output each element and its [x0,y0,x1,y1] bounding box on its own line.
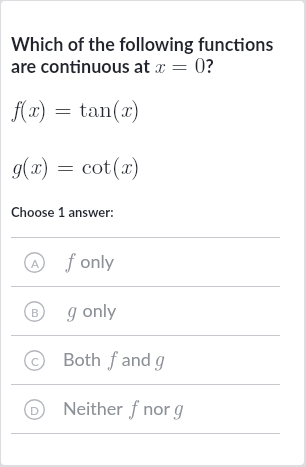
staticText: D [30,403,39,417]
staticText: g only [66,293,117,323]
staticText: f(x) = tan(x) [12,92,140,124]
button[interactable]: A [1,238,304,286]
button[interactable]: B [1,287,304,335]
button[interactable]: D [1,385,304,433]
staticText: Choose 1 answer: [11,204,114,220]
staticText: A [31,256,39,270]
staticText: B [31,305,39,319]
staticText: f only [66,244,114,274]
button[interactable]: C [1,336,304,384]
staticText: Neither f nor g [63,391,183,421]
staticText: C [31,354,39,368]
staticText: Both f and g [63,342,164,372]
staticText: Which of the following functions are con… [11,33,300,79]
staticText: g(x) = cot(x) [11,149,140,181]
